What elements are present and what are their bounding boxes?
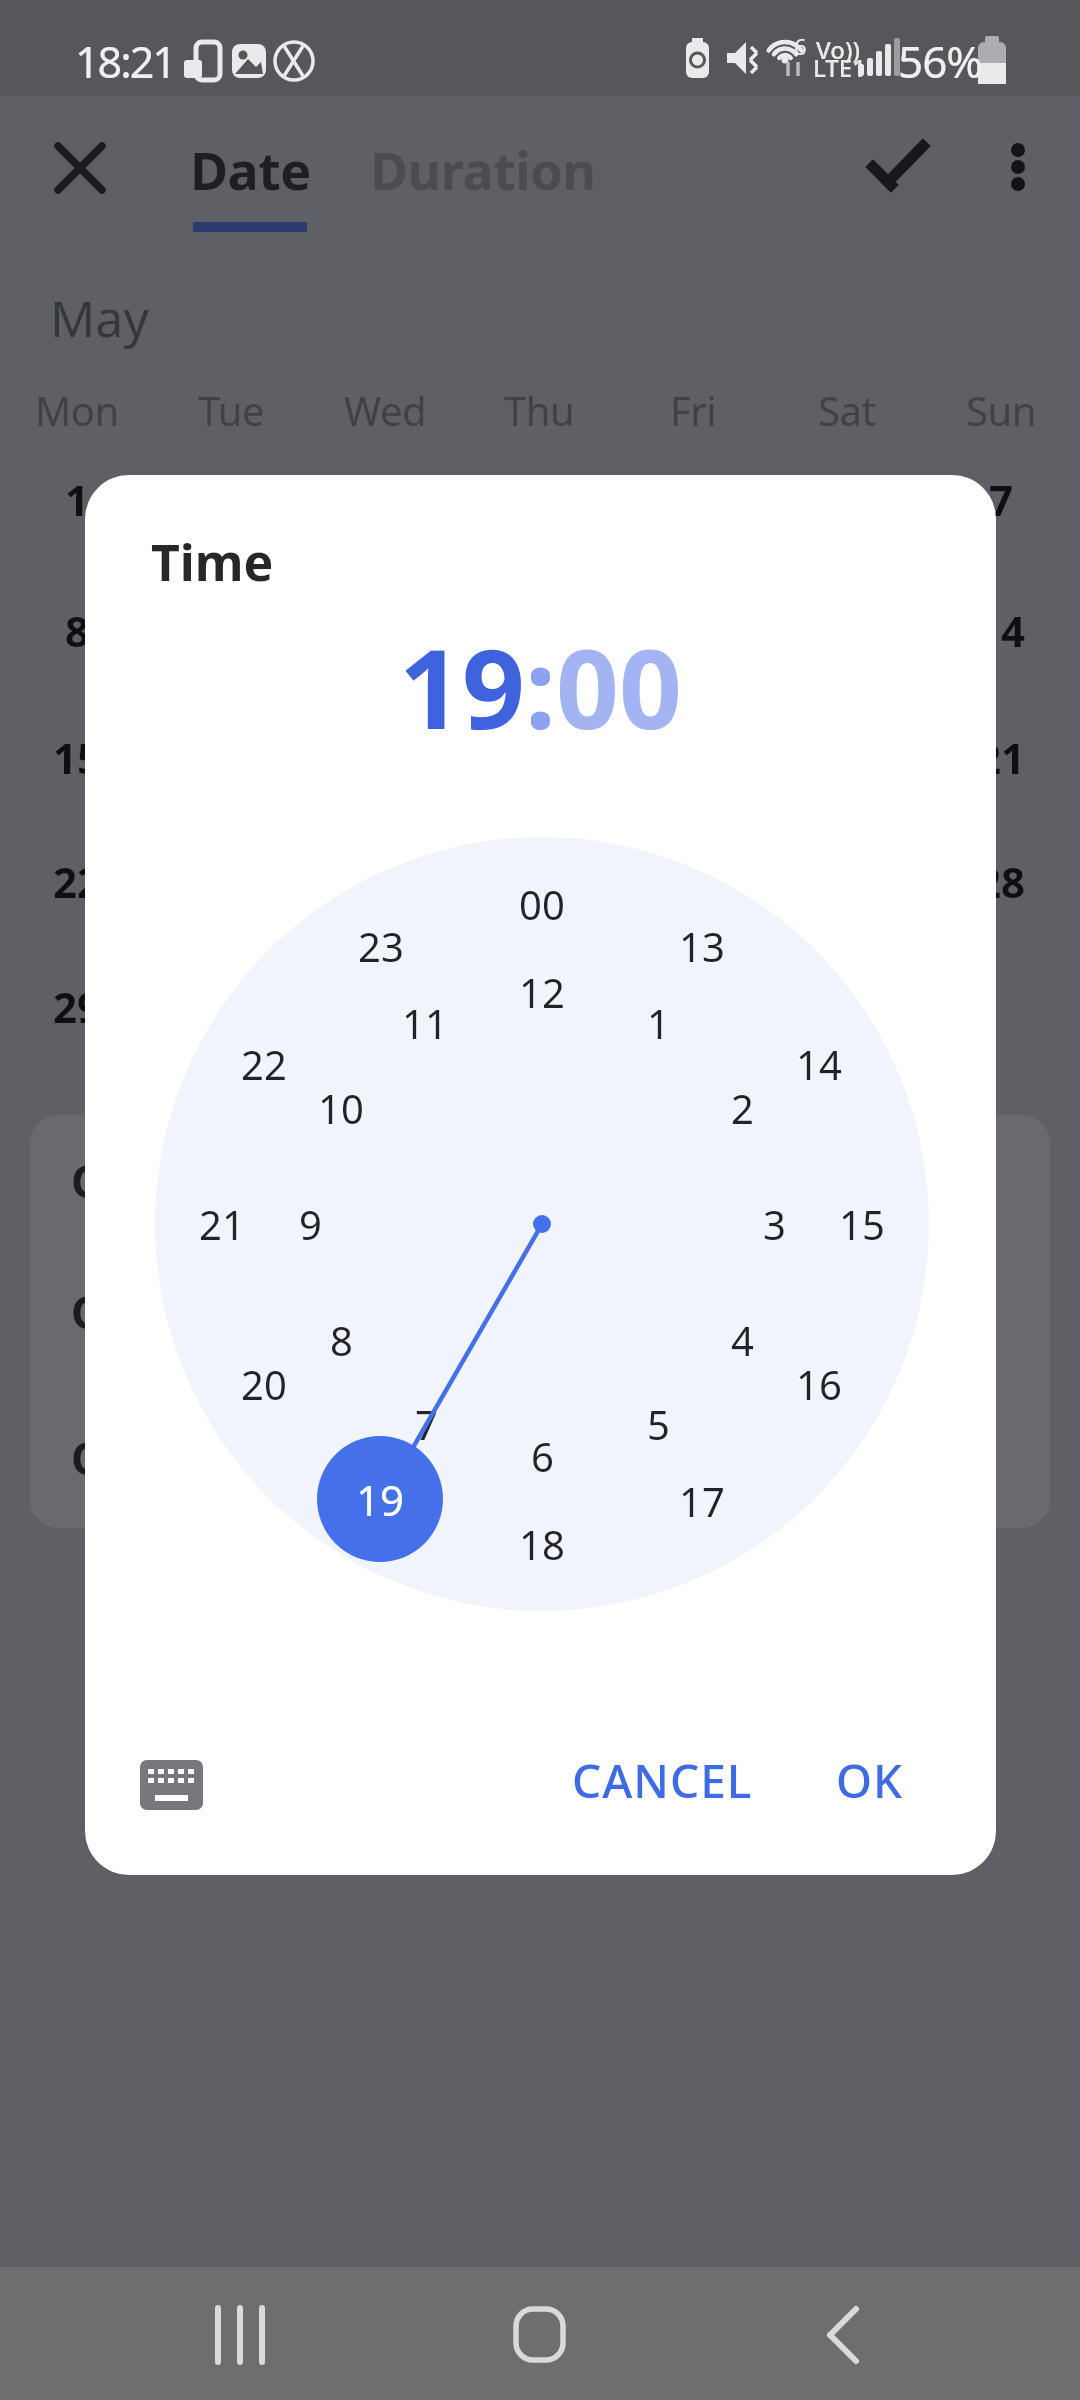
staticText: 21	[977, 729, 1026, 786]
button[interactable]	[170, 120, 340, 236]
staticText: Date	[190, 134, 311, 205]
staticText: 8	[65, 602, 90, 659]
staticText: 6	[835, 471, 860, 528]
staticText: 22	[241, 1037, 287, 1091]
button[interactable]	[470, 2272, 610, 2395]
button[interactable]	[350, 120, 616, 236]
staticText: Thu	[504, 383, 575, 437]
staticText: 10	[318, 1081, 364, 1135]
staticText: 7	[415, 1397, 438, 1451]
staticText: 4	[731, 1313, 754, 1367]
staticText: 8	[330, 1313, 353, 1367]
staticText: 1	[647, 996, 670, 1050]
staticText: 3	[763, 1197, 786, 1251]
staticText: 25	[515, 853, 564, 910]
button[interactable]	[770, 2272, 910, 2395]
button[interactable]	[170, 2272, 310, 2395]
staticText: Fri	[670, 383, 717, 437]
staticText: 18	[515, 729, 564, 786]
staticText: CANCEL	[572, 1749, 753, 1812]
staticText: 00	[556, 611, 682, 761]
button[interactable]	[155, 837, 929, 1611]
staticText: 29	[53, 978, 102, 1035]
staticText: 16	[796, 1357, 842, 1411]
button[interactable]: 19	[317, 1436, 443, 1562]
staticText: 19	[356, 1471, 405, 1528]
staticText: 11	[402, 996, 448, 1050]
staticText: 9	[299, 1197, 322, 1251]
staticText: Sat	[818, 383, 876, 437]
staticText: 13	[679, 919, 725, 973]
staticText: 14	[977, 602, 1026, 659]
staticText: May	[50, 284, 149, 352]
staticText: Mon	[35, 383, 119, 437]
button[interactable]	[861, 132, 933, 204]
staticText: Duration	[370, 134, 596, 205]
staticText: 26	[669, 853, 718, 910]
staticText: OK	[836, 1749, 904, 1812]
staticText: 17	[679, 1474, 725, 1528]
staticText: 6	[794, 31, 807, 61]
staticText: 6	[531, 1429, 554, 1483]
button[interactable]	[128, 1748, 216, 1823]
staticText: 21	[199, 1197, 245, 1251]
staticText: 12	[519, 965, 565, 1019]
staticText: 24	[361, 853, 410, 910]
staticText: 7	[989, 471, 1014, 528]
button[interactable]	[982, 132, 1054, 204]
staticText: :	[525, 611, 556, 761]
staticText: 18:21	[75, 32, 175, 91]
staticText: 5	[681, 471, 706, 528]
staticText: Vo))	[816, 33, 860, 66]
staticText: 14	[796, 1037, 842, 1091]
staticText: 00	[519, 877, 565, 931]
button[interactable]: CANCEL	[562, 1735, 762, 1825]
staticText: 56%	[898, 31, 982, 91]
staticText: 1	[65, 471, 90, 528]
staticText: 2	[219, 471, 244, 528]
staticText: 15	[839, 1197, 885, 1251]
staticText: 23	[358, 919, 404, 973]
staticText: Wed	[344, 383, 427, 437]
button[interactable]: OK	[805, 1735, 935, 1825]
staticText: Tue	[198, 383, 265, 437]
staticText: 4	[527, 471, 552, 528]
staticText: Time	[151, 528, 274, 596]
staticText: O	[71, 1282, 106, 1342]
staticText: 30	[207, 978, 256, 1035]
staticText: 31	[361, 978, 410, 1035]
staticText: Sun	[966, 383, 1036, 437]
staticText: 15	[53, 729, 102, 786]
staticText: 19	[399, 611, 525, 761]
staticText: 28	[977, 853, 1026, 910]
button[interactable]	[44, 132, 116, 204]
staticText: 22	[53, 853, 102, 910]
staticText: 3	[373, 471, 398, 528]
staticText: 5	[647, 1397, 670, 1451]
staticText: 20	[241, 1357, 287, 1411]
staticText: LTE1	[813, 51, 866, 84]
staticText: O	[71, 1151, 106, 1211]
staticText: O	[71, 1428, 106, 1488]
staticText: 2	[731, 1081, 754, 1135]
staticText: 18	[519, 1517, 565, 1571]
